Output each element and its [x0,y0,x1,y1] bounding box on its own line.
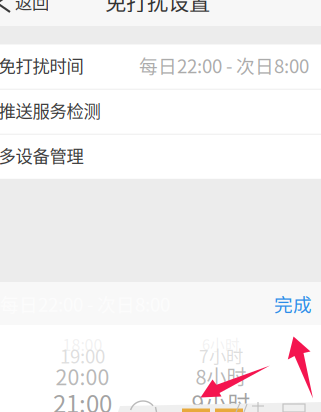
staticText: 8小时 [195,361,246,390]
staticText: 返回 [15,0,49,14]
staticText: 19:00 [60,342,105,369]
staticText: 18:00 [62,332,102,356]
button[interactable]: 推送服务检测 [0,89,321,134]
button[interactable]: 免打扰时间 [0,44,321,89]
staticText: 免打扰时间 [0,53,83,78]
button[interactable]: 多设备管理 [0,134,321,179]
staticText: 完成 [274,290,312,317]
staticText: 多设备管理 [0,143,83,168]
staticText: 免打扰设置 [105,0,210,16]
staticText: 6小时 [202,333,240,354]
staticText: 每日22:00 - 次日8:00 [139,52,309,79]
staticText: 7小时 [199,343,243,368]
staticText: 推送服务检测 [0,98,100,123]
staticText: 21:00 [53,385,112,412]
staticText: 9小时 [191,386,250,412]
button[interactable]: 完成 [265,282,321,325]
button[interactable]: 返回 [0,0,62,26]
staticText: 20:00 [55,360,109,391]
